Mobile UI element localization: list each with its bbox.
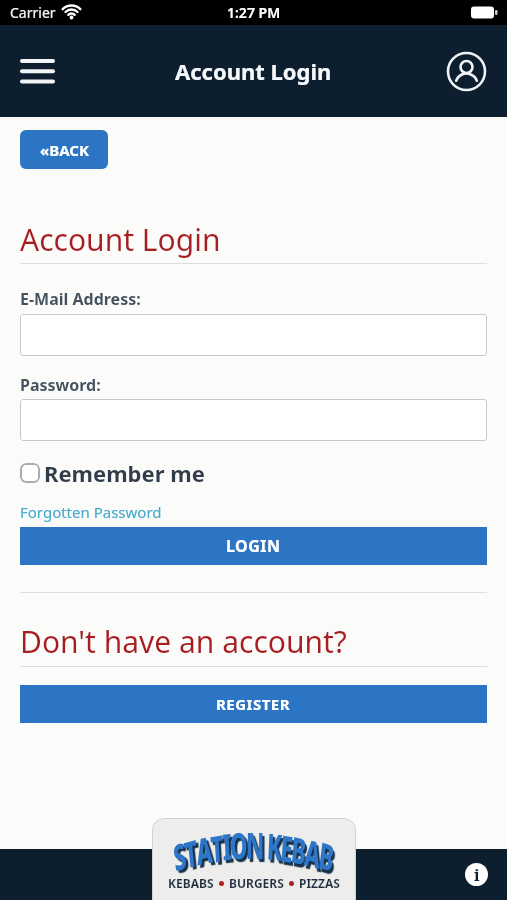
button[interactable]: Remember me bbox=[20, 458, 205, 488]
staticText: O bbox=[229, 820, 248, 870]
button[interactable]: i bbox=[465, 863, 488, 886]
staticText: «BACK bbox=[40, 140, 89, 160]
staticText: BURGERS bbox=[229, 875, 284, 891]
staticText: T bbox=[209, 823, 226, 874]
staticText: A bbox=[302, 827, 323, 880]
staticText: Remember me bbox=[44, 458, 205, 488]
staticText: 1:27 PM bbox=[227, 3, 281, 22]
staticText: KEBABS bbox=[168, 875, 214, 891]
button[interactable]: LOGIN bbox=[20, 527, 487, 565]
button[interactable] bbox=[20, 399, 487, 441]
staticText: N bbox=[246, 821, 264, 870]
staticText: Account Login bbox=[20, 219, 221, 260]
staticText: Account Login bbox=[175, 56, 332, 86]
staticText: E-Mail Address: bbox=[20, 288, 141, 310]
button[interactable]: «BACK bbox=[20, 130, 108, 169]
staticText: B bbox=[289, 825, 309, 876]
button[interactable] bbox=[20, 314, 487, 356]
staticText: E bbox=[279, 823, 295, 874]
button[interactable]: Forgotten Password bbox=[20, 502, 162, 522]
staticText: T bbox=[182, 827, 201, 879]
staticText: A bbox=[194, 824, 214, 876]
staticText: LOGIN bbox=[226, 535, 281, 557]
staticText: PIZZAS bbox=[299, 875, 340, 891]
staticText: S bbox=[170, 830, 189, 883]
staticText: B bbox=[316, 830, 337, 883]
staticText: I bbox=[221, 822, 233, 871]
staticText: K bbox=[266, 821, 283, 872]
staticText: i bbox=[474, 864, 480, 886]
button[interactable]: REGISTER bbox=[20, 685, 487, 723]
staticText: Password: bbox=[20, 374, 101, 396]
button[interactable] bbox=[20, 59, 55, 84]
staticText: REGISTER bbox=[216, 694, 291, 714]
button[interactable] bbox=[446, 51, 487, 92]
staticText: Carrier bbox=[10, 3, 56, 22]
staticText: Don't have an account? bbox=[20, 621, 347, 662]
staticText bbox=[262, 821, 269, 870]
